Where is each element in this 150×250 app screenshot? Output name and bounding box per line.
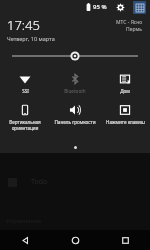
button[interactable]: User	[133, 1, 146, 14]
button[interactable]: Brightness	[0, 50, 150, 62]
staticText: Вертикальная ориентация	[9, 119, 41, 131]
staticText: 95 %	[93, 3, 107, 11]
staticText: Bluetooth	[64, 88, 86, 94]
button[interactable]: Нажмите клавиш	[100, 102, 150, 127]
staticText: Управление	[6, 217, 42, 225]
staticText: 17:45	[7, 16, 40, 34]
button[interactable]: Вертикальная ориентация	[0, 102, 50, 133]
button[interactable]: Back	[0, 230, 50, 250]
staticText: SSI	[22, 88, 29, 94]
button[interactable]: Панель громкости	[50, 102, 100, 127]
staticText: МТС - Ясно	[116, 19, 143, 26]
staticText: Todo	[31, 177, 48, 187]
button[interactable]: Bluetooth	[50, 71, 100, 96]
staticText: Пермь	[126, 26, 143, 33]
staticText: Панель громкости	[54, 119, 96, 125]
button[interactable]: SSI	[0, 71, 50, 96]
staticText: Четверг, 10 марта	[7, 35, 55, 42]
button[interactable]: Recent apps	[100, 230, 150, 250]
button[interactable]: Settings	[114, 1, 127, 14]
button[interactable]: Дом	[100, 71, 150, 96]
button[interactable]: Home	[50, 230, 100, 250]
staticText: Нажмите клавиш	[106, 119, 145, 125]
staticText: Дом	[120, 88, 130, 94]
